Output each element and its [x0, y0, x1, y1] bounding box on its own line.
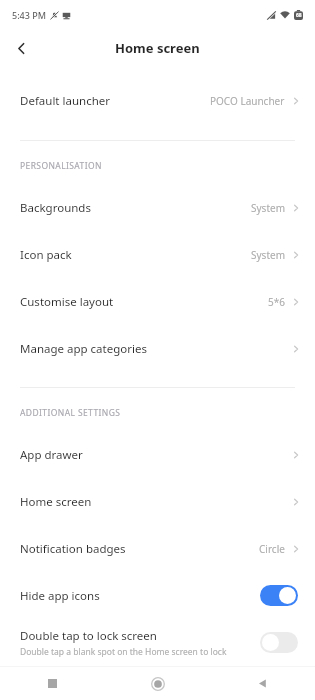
button[interactable]: Double tap to lock screen — [260, 632, 298, 653]
staticText: Double tap a blank spot on the Home scre… — [20, 646, 227, 658]
staticText: Manage app categories — [20, 341, 147, 357]
button[interactable]: Backgrounds — [0, 184, 315, 231]
staticText: ADDITIONAL SETTINGS — [20, 407, 121, 419]
staticText: System — [251, 201, 285, 215]
button[interactable]: Icon pack — [0, 231, 315, 278]
staticText: Hide app icons — [20, 588, 100, 604]
staticText: Customise layout — [20, 294, 114, 310]
staticText: Notification badges — [20, 541, 126, 557]
staticText: App drawer — [20, 447, 83, 463]
button[interactable]: Back — [0, 30, 42, 66]
button[interactable]: Customise layout — [0, 278, 315, 325]
button[interactable]: Recents — [0, 667, 105, 700]
button[interactable]: Notification badges — [0, 525, 315, 572]
staticText: 5:43 PM — [12, 9, 46, 21]
button[interactable]: Hide app icons — [0, 572, 315, 619]
staticText: Home screen — [115, 39, 200, 57]
button[interactable]: App drawer — [0, 431, 315, 478]
staticText: PERSONALISATION — [20, 160, 102, 172]
button[interactable]: Back — [210, 667, 315, 700]
staticText: Backgrounds — [20, 200, 91, 216]
staticText: Icon pack — [20, 247, 72, 263]
button[interactable]: Double tap to lock screen — [0, 619, 315, 666]
staticText: Default launcher — [20, 93, 110, 109]
staticText: Home screen — [20, 494, 92, 510]
button[interactable]: Home — [105, 667, 210, 700]
staticText: POCO Launcher — [210, 94, 285, 108]
button[interactable]: Manage app categories — [0, 325, 315, 372]
staticText: Double tap to lock screen — [20, 628, 157, 644]
button[interactable]: Hide app icons — [260, 585, 298, 606]
button[interactable]: Home screen — [0, 478, 315, 525]
button[interactable]: Default launcher — [0, 77, 315, 124]
staticText: Circle — [259, 542, 285, 556]
staticText: 5*6 — [268, 295, 285, 309]
staticText: 68 — [296, 12, 302, 19]
staticText: System — [251, 248, 285, 262]
